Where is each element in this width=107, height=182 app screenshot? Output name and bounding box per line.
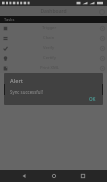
button[interactable]: Print XML [0,63,107,73]
staticText: Trigger [42,25,57,31]
staticText: Dashboard [40,8,67,15]
button[interactable]: Chain [0,33,107,43]
button[interactable]: Recent apps [77,170,89,182]
button[interactable]: Info about Print XML [98,64,106,72]
staticText: Certify [43,55,56,61]
button[interactable]: Info about Verify [98,44,106,52]
staticText: Tasks [4,17,15,22]
button[interactable]: OK [86,95,99,102]
button[interactable]: Trigger [0,23,107,33]
staticText: Sync successful! [10,89,43,95]
staticText: Alert [10,77,23,85]
button[interactable]: Verify [0,43,107,53]
button[interactable]: Back [18,170,30,182]
staticText: Print XML [40,65,59,71]
button[interactable]: Info about Certify [98,54,106,62]
staticText: OK [89,96,96,101]
button[interactable]: Certify [0,53,107,63]
button[interactable]: Tasks [0,16,107,23]
button[interactable]: Home [48,170,60,182]
staticText: Verify [43,45,55,51]
button[interactable]: Info about Chain [98,34,106,42]
staticText: Chain [43,35,55,41]
button[interactable]: Info about Trigger [98,24,106,32]
